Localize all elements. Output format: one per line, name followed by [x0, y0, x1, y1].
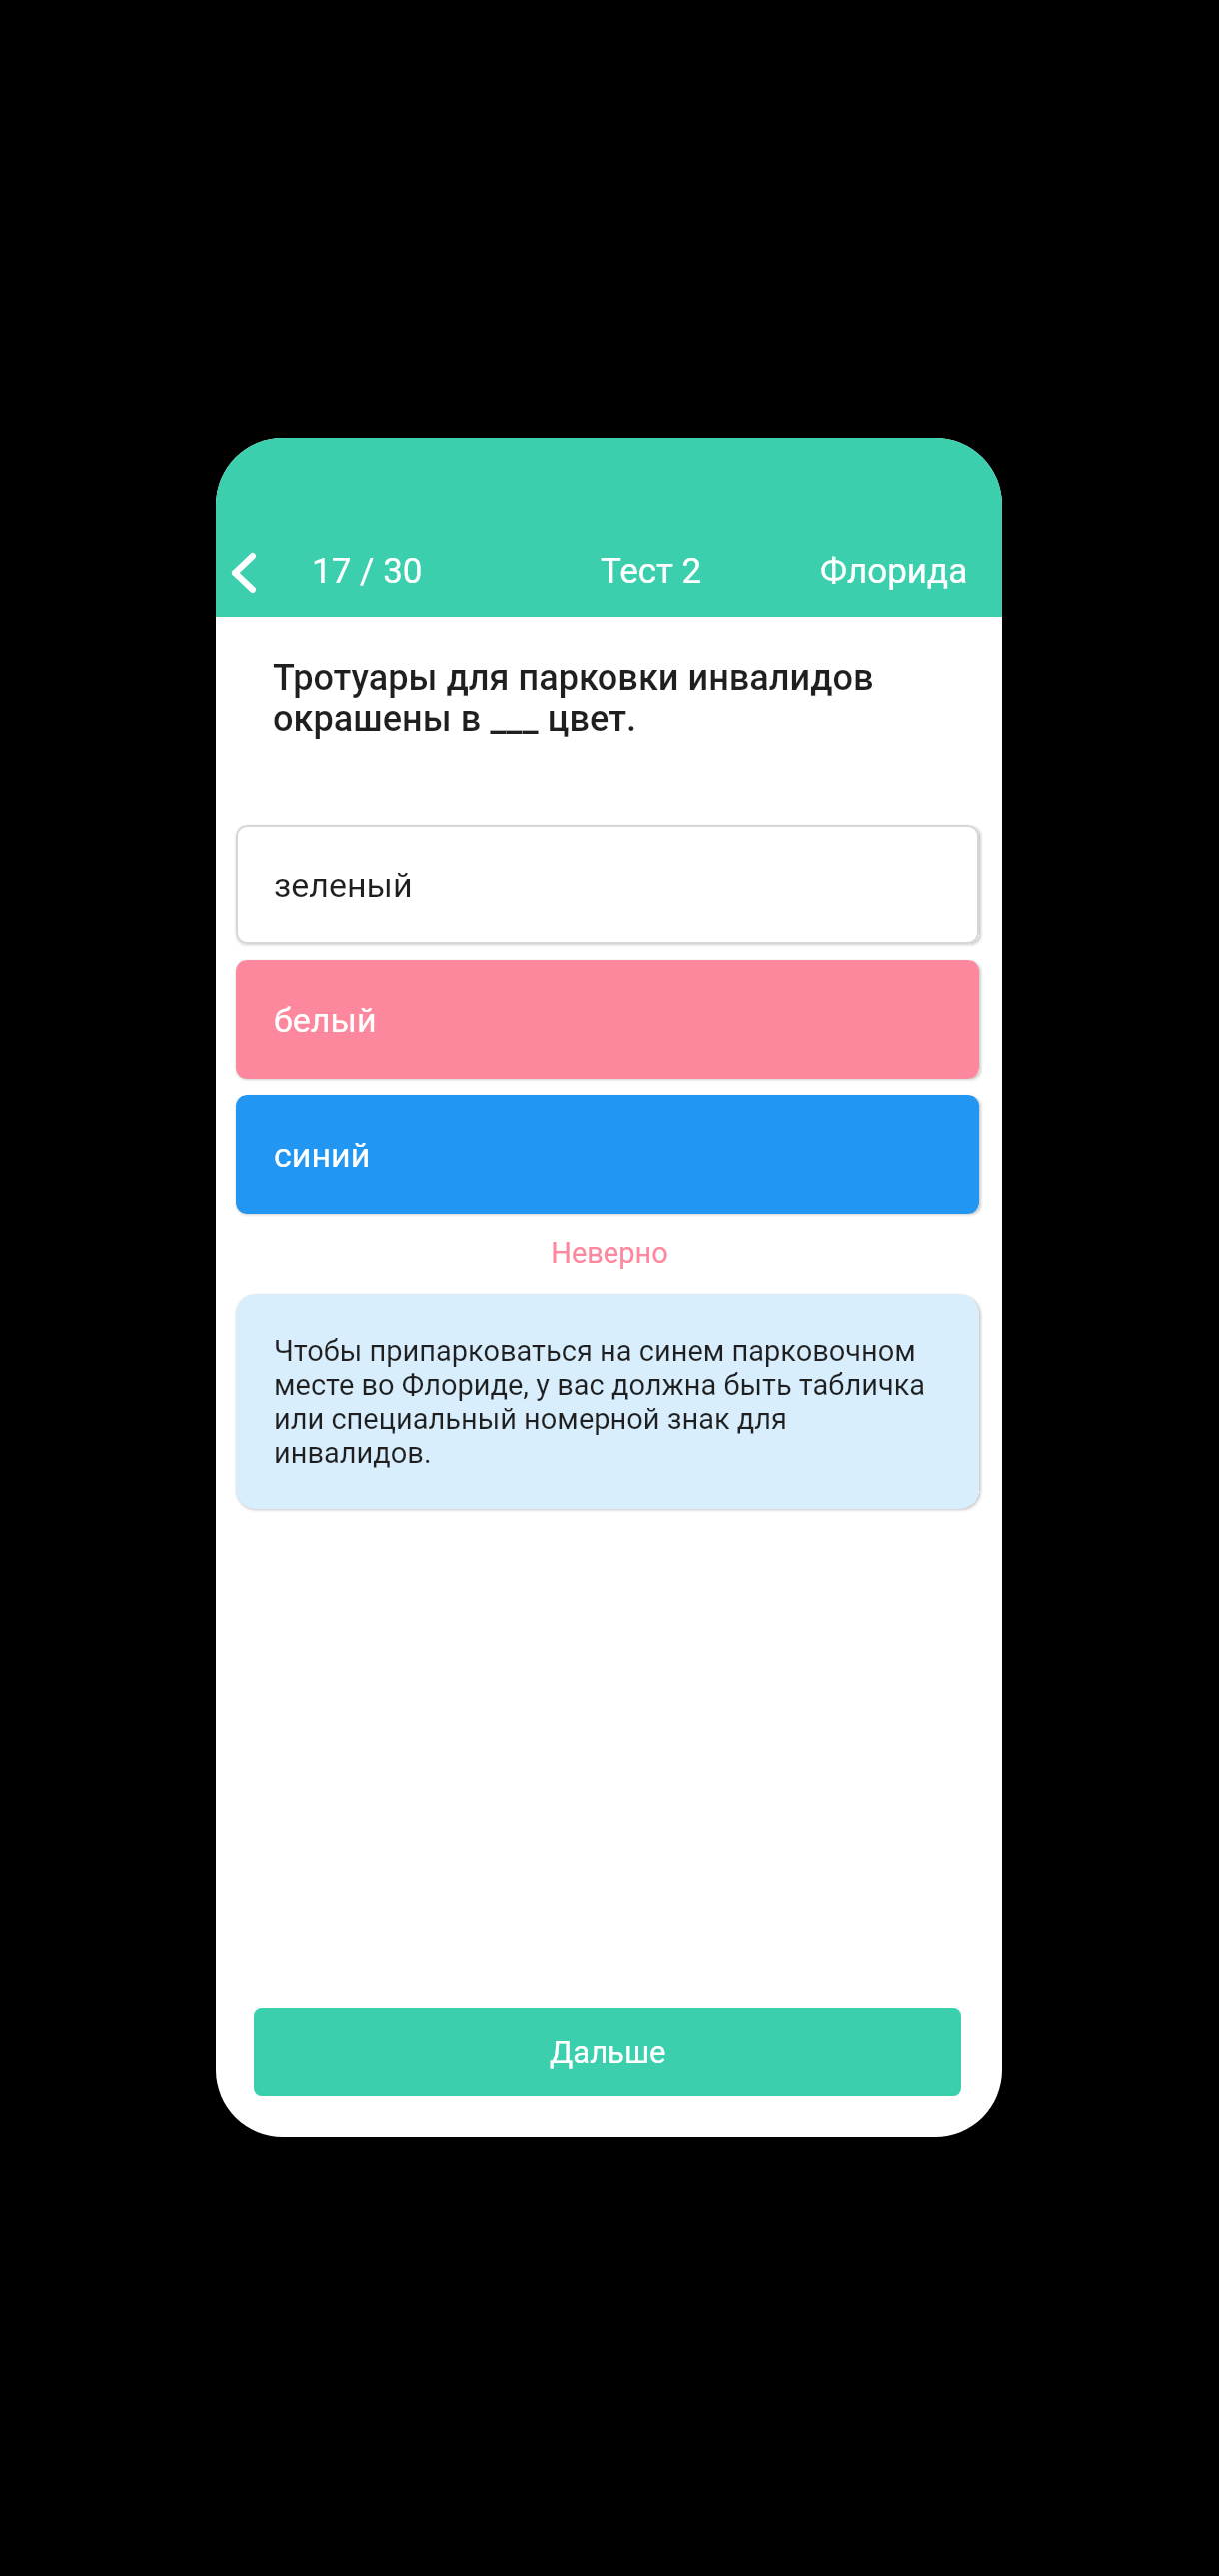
staticText: Неверно [551, 1236, 668, 1270]
staticText: 17 / 30 [312, 551, 423, 592]
staticText: Чтобы припарковаться на синем парковочно… [274, 1334, 949, 1470]
staticText: Флорида [820, 551, 968, 592]
button[interactable]: синий [236, 1095, 979, 1214]
button[interactable]: Дальше [254, 2008, 961, 2096]
staticText: синий [274, 1135, 371, 1175]
staticText: зеленый [274, 865, 413, 905]
button[interactable]: белый [236, 960, 979, 1079]
staticText: Тротуары для парковки инвалидов окрашены… [273, 657, 962, 739]
staticText: белый [274, 1000, 377, 1040]
staticText: Тест 2 [601, 551, 702, 592]
staticText: Дальше [550, 2034, 666, 2070]
button[interactable]: Back [216, 545, 271, 600]
button[interactable]: зеленый [236, 825, 979, 944]
